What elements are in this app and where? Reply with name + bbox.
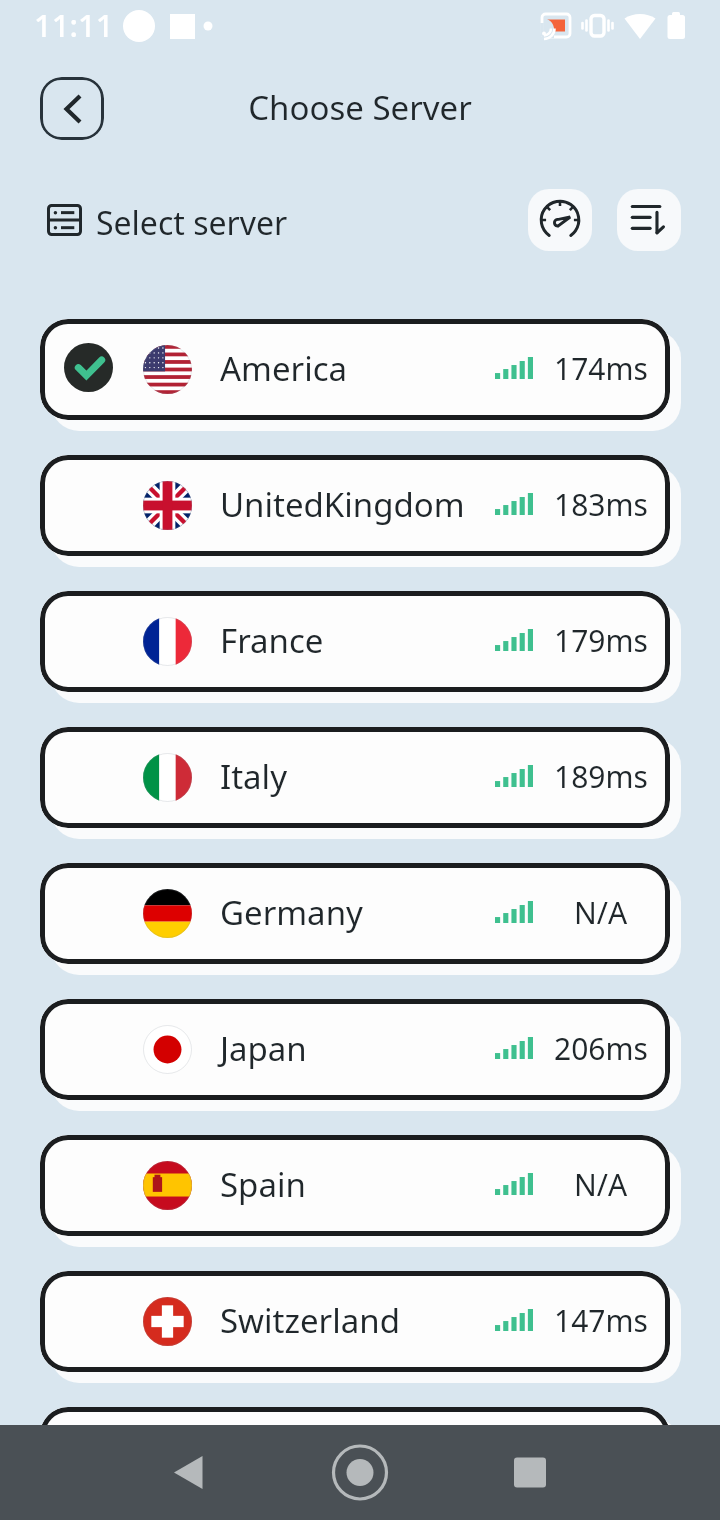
staticText: 206ms xyxy=(554,1028,648,1069)
button[interactable]: France xyxy=(40,591,670,692)
staticText: N/A xyxy=(574,892,628,933)
button[interactable]: America xyxy=(40,319,670,420)
staticText: Switzerland xyxy=(220,1298,400,1343)
button[interactable]: Netherlands xyxy=(40,1407,670,1508)
staticText: Germany xyxy=(220,890,363,935)
button[interactable]: UnitedKingdom xyxy=(40,455,670,556)
staticText: N/A xyxy=(574,1164,628,1205)
staticText: Japan xyxy=(220,1026,307,1071)
button[interactable]: Sort xyxy=(617,189,681,251)
staticText: 189ms xyxy=(554,756,648,797)
staticText: 147ms xyxy=(554,1300,648,1341)
staticText: 11:11 xyxy=(34,4,114,46)
button[interactable]: Italy xyxy=(40,727,670,828)
staticText: America xyxy=(220,346,348,391)
button[interactable]: Speed test xyxy=(528,189,592,251)
button[interactable]: Spain xyxy=(40,1135,670,1236)
button[interactable]: Switzerland xyxy=(40,1271,670,1372)
staticText: 174ms xyxy=(554,348,648,389)
button[interactable]: Back xyxy=(130,1425,250,1520)
staticText: Select server xyxy=(96,201,288,245)
staticText: Choose Server xyxy=(0,85,720,130)
button[interactable]: Japan xyxy=(40,999,670,1100)
staticText: 179ms xyxy=(554,620,648,661)
staticText: 183ms xyxy=(554,484,648,525)
button[interactable]: Back xyxy=(40,77,104,140)
staticText: Spain xyxy=(220,1162,306,1207)
staticText: Italy xyxy=(220,754,287,799)
staticText: Netherlands xyxy=(220,1434,412,1479)
button[interactable]: Recent apps xyxy=(470,1425,590,1520)
staticText: UnitedKingdom xyxy=(220,482,465,527)
staticText: France xyxy=(220,618,324,663)
button[interactable]: Germany xyxy=(40,863,670,964)
button[interactable]: Home xyxy=(300,1425,420,1520)
